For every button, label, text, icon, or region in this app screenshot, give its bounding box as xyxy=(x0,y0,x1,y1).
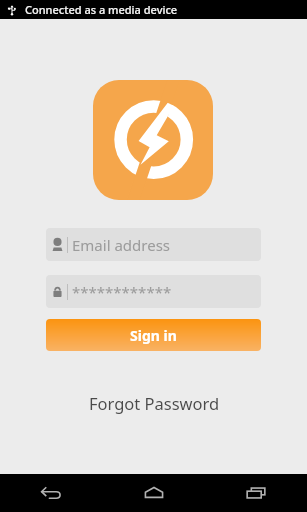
staticText: Connected as a media device xyxy=(25,2,178,17)
staticText: Sign in xyxy=(130,326,177,345)
button[interactable]: Forgot Password xyxy=(82,388,226,418)
button[interactable]: Home xyxy=(103,474,205,512)
button[interactable]: Email address xyxy=(46,228,261,261)
button[interactable]: Back xyxy=(0,474,103,512)
button[interactable]: Sign in xyxy=(46,319,261,351)
staticText: Email address xyxy=(72,235,171,255)
staticText: Forgot Password xyxy=(89,392,220,414)
button[interactable]: ************ xyxy=(46,275,261,308)
button[interactable]: Recent apps xyxy=(205,474,307,512)
staticText: ************ xyxy=(72,282,172,302)
